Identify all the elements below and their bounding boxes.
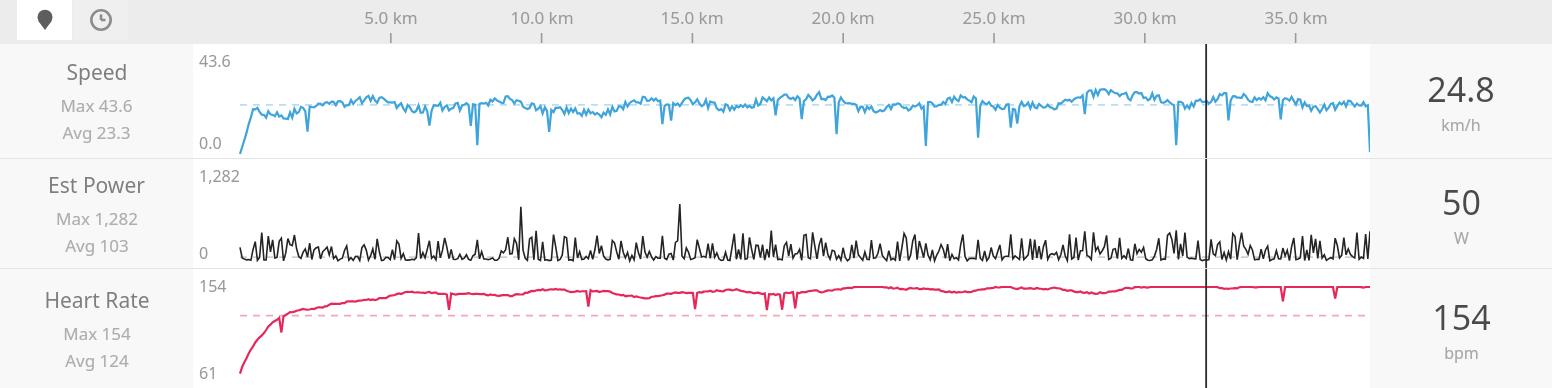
staticText: W	[1454, 227, 1469, 249]
staticText: 1,282	[199, 165, 240, 187]
staticText: 5.0 km	[364, 6, 418, 29]
staticText: Avg 103	[65, 234, 129, 257]
staticText: 43.6	[199, 50, 231, 72]
button[interactable]: Time axis	[73, 0, 128, 40]
staticText: Heart Rate	[44, 286, 150, 315]
staticText: Avg 23.3	[62, 121, 131, 144]
staticText: Avg 124	[65, 349, 129, 372]
button[interactable]: Distance axis	[17, 0, 72, 40]
staticText: 30.0 km	[1113, 6, 1177, 29]
button[interactable]: Est Power	[0, 159, 193, 268]
staticText: 61	[199, 362, 218, 384]
staticText: 10.0 km	[510, 6, 574, 29]
button[interactable]: 50	[1370, 159, 1552, 268]
staticText: Max 43.6	[60, 94, 133, 117]
staticText: km/h	[1441, 114, 1481, 136]
staticText: Est Power	[48, 171, 145, 200]
staticText: 0	[199, 242, 209, 264]
staticText: bpm	[1444, 342, 1479, 364]
staticText: Max 1,282	[56, 207, 138, 230]
staticText: 50	[1442, 179, 1481, 225]
button[interactable]: Heart Rate	[0, 269, 193, 388]
staticText: 154	[1432, 294, 1491, 340]
staticText: 0.0	[199, 132, 222, 154]
staticText: 35.0 km	[1264, 6, 1328, 29]
staticText: 15.0 km	[660, 6, 724, 29]
staticText: Max 154	[63, 322, 131, 345]
staticText: 24.8	[1427, 66, 1495, 112]
staticText: Speed	[66, 58, 128, 87]
button[interactable]: 24.8	[1370, 44, 1552, 158]
button[interactable]: Speed	[0, 44, 193, 158]
staticText: 25.0 km	[962, 6, 1026, 29]
button[interactable]: 154	[1370, 269, 1552, 388]
staticText: 20.0 km	[811, 6, 875, 29]
staticText: 154	[199, 275, 227, 297]
